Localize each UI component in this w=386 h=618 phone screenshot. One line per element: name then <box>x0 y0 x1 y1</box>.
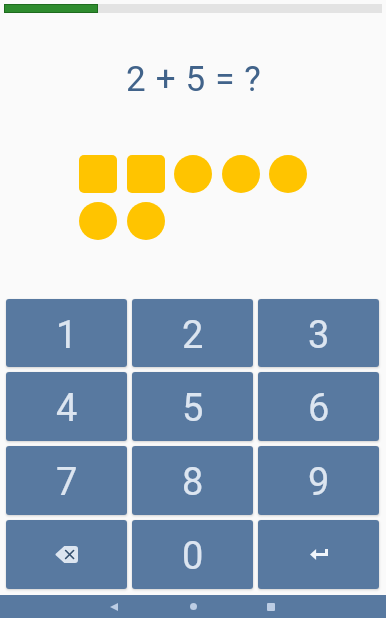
button[interactable]: 6 <box>258 372 379 441</box>
staticText: 3 <box>308 313 330 358</box>
button[interactable]: 4 <box>6 372 127 441</box>
staticText: 8 <box>182 460 204 505</box>
button[interactable]: Back <box>100 595 128 618</box>
staticText: 6 <box>308 386 330 431</box>
staticText: 0 <box>182 534 204 579</box>
button[interactable]: Backspace <box>6 520 127 589</box>
staticText: 5 <box>182 386 204 431</box>
button[interactable]: 7 <box>6 446 127 515</box>
staticText: 9 <box>308 460 330 505</box>
staticText: 2 <box>182 313 204 358</box>
button[interactable]: 1 <box>6 299 127 367</box>
button[interactable]: Enter <box>258 520 379 589</box>
button[interactable]: 3 <box>258 299 379 367</box>
button[interactable]: Recent apps <box>257 595 285 618</box>
button[interactable]: Home <box>179 595 207 618</box>
staticText: 2 + 5 = ? <box>126 59 262 99</box>
button[interactable]: 5 <box>132 372 253 441</box>
staticText: 4 <box>56 386 78 431</box>
button[interactable]: 9 <box>258 446 379 515</box>
button[interactable]: 0 <box>132 520 253 589</box>
button[interactable]: 2 <box>132 299 253 367</box>
button[interactable]: 8 <box>132 446 253 515</box>
staticText: 1 <box>56 313 78 358</box>
staticText: 7 <box>56 460 78 505</box>
